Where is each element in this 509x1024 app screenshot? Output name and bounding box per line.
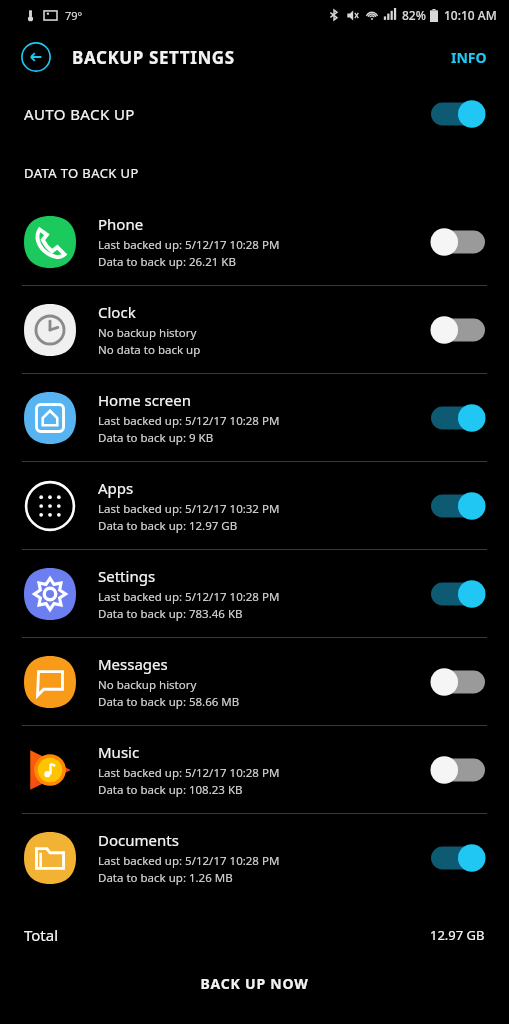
button[interactable]: Back (18, 39, 54, 75)
staticText: Last backed up: 5/12/17 10:28 PM (98, 853, 280, 869)
staticText: No backup history (98, 325, 197, 341)
staticText: Home screen (98, 390, 192, 410)
staticText: Last backed up: 5/12/17 10:28 PM (98, 413, 280, 429)
staticText: Music (98, 742, 140, 762)
staticText: Apps (98, 478, 134, 498)
staticText: Data to back up: 9 KB (98, 430, 214, 446)
staticText: INFO (451, 48, 487, 67)
staticText: Last backed up: 5/12/17 10:32 PM (98, 501, 280, 517)
staticText: No backup history (98, 677, 197, 693)
staticText: No data to back up (98, 342, 201, 358)
staticText: Data to back up: 783.46 KB (98, 606, 243, 622)
staticText: 82% (402, 7, 426, 23)
staticText: Data to back up: 1.26 MB (98, 870, 233, 886)
staticText: Total (24, 925, 59, 945)
button[interactable]: Apps (0, 462, 509, 549)
staticText: Last backed up: 5/12/17 10:28 PM (98, 765, 280, 781)
button[interactable]: INFO (447, 42, 491, 73)
staticText: BACK UP NOW (200, 974, 309, 993)
staticText: Data to back up: 26.21 KB (98, 254, 236, 270)
button[interactable]: Documents (0, 814, 509, 901)
staticText: Settings (98, 566, 156, 586)
button[interactable]: Clock (0, 286, 509, 373)
button[interactable]: Settings (0, 550, 509, 637)
staticText: Messages (98, 654, 168, 674)
staticText: Clock (98, 302, 136, 322)
staticText: BACKUP SETTINGS (72, 46, 235, 69)
button[interactable]: BACK UP NOW (0, 954, 509, 1012)
staticText: Data to back up: 12.97 GB (98, 518, 238, 534)
staticText: Last backed up: 5/12/17 10:28 PM (98, 589, 280, 605)
button[interactable]: Music (0, 726, 509, 813)
staticText: Documents (98, 830, 179, 850)
button[interactable]: Home screen (0, 374, 509, 461)
button[interactable]: AUTO BACK UP (0, 84, 509, 144)
staticText: 12.97 GB (430, 926, 485, 944)
staticText: 79° (65, 8, 83, 23)
staticText: Data to back up: 108.23 KB (98, 782, 243, 798)
staticText: Data to back up: 58.66 MB (98, 694, 240, 710)
button[interactable]: Messages (0, 638, 509, 725)
staticText: AUTO BACK UP (24, 104, 135, 124)
staticText: DATA TO BACK UP (24, 164, 139, 182)
staticText: Phone (98, 214, 144, 234)
staticText: Last backed up: 5/12/17 10:28 PM (98, 237, 280, 253)
staticText: 10:10 AM (444, 7, 497, 23)
button[interactable]: Phone (0, 198, 509, 285)
